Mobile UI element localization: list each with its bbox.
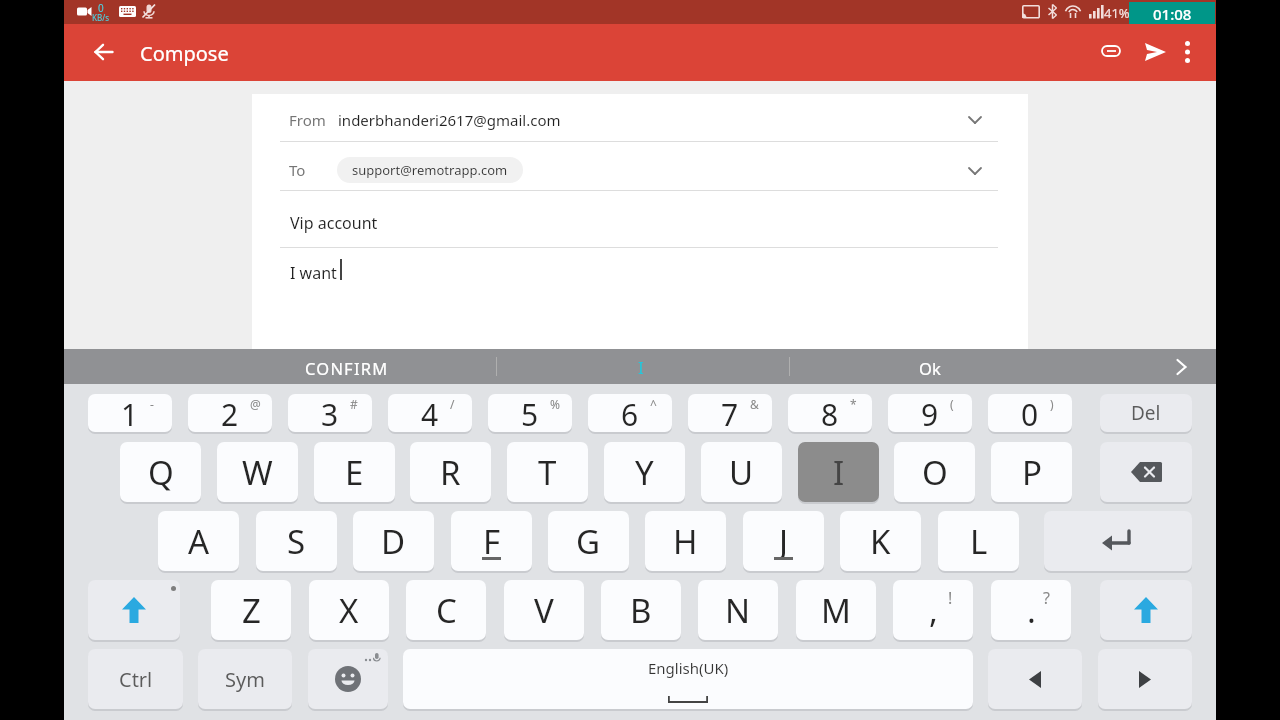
button[interactable]: X [309, 580, 389, 640]
button[interactable] [308, 649, 388, 709]
button[interactable]: M [796, 580, 876, 640]
button[interactable] [164, 349, 496, 384]
button[interactable]: Ctrl [88, 649, 183, 709]
button[interactable]: V [504, 580, 584, 640]
button[interactable]: F [451, 511, 532, 571]
button[interactable]: I [798, 442, 879, 502]
button[interactable]: R [410, 442, 491, 502]
button[interactable]: 6 [588, 394, 672, 432]
button[interactable] [1096, 36, 1128, 68]
staticText: G [576, 519, 601, 564]
button[interactable]: Z [211, 580, 291, 640]
button[interactable] [1146, 349, 1216, 384]
staticText: ! [948, 587, 953, 609]
button[interactable] [789, 349, 1146, 384]
staticText: L [970, 519, 988, 564]
button[interactable]: 5 [488, 394, 572, 432]
button[interactable]: Q [120, 442, 201, 502]
button[interactable]: Y [604, 442, 685, 502]
staticText: M [821, 588, 851, 633]
button[interactable] [988, 649, 1082, 709]
button[interactable]: U [701, 442, 782, 502]
button[interactable]: support@remotrapp.com [337, 157, 523, 183]
button[interactable]: 9 [888, 394, 972, 432]
button[interactable]: T [507, 442, 588, 502]
button[interactable]: To [252, 141, 1028, 190]
button[interactable] [1138, 35, 1172, 69]
button[interactable]: 1 [88, 394, 172, 432]
button[interactable]: N [698, 580, 778, 640]
button[interactable]: H [645, 511, 726, 571]
button[interactable]: D [353, 511, 434, 571]
button[interactable]: . [991, 580, 1071, 640]
staticText: To [289, 160, 306, 180]
button[interactable]: 7 [688, 394, 772, 432]
staticText: , [929, 588, 938, 633]
staticText: N [725, 588, 751, 633]
button[interactable]: Vip account [252, 190, 1028, 246]
button[interactable]: 0 [988, 394, 1072, 432]
button[interactable] [88, 36, 120, 68]
staticText: H [673, 519, 698, 564]
button[interactable]: C [406, 580, 486, 640]
button[interactable]: J [743, 511, 824, 571]
staticText: Ok [919, 357, 941, 379]
button[interactable] [1098, 649, 1192, 709]
staticText: J [779, 519, 789, 564]
staticText: T [538, 450, 557, 495]
button[interactable] [88, 580, 180, 640]
button[interactable]: Del [1100, 394, 1192, 432]
staticText: ^ [650, 396, 657, 412]
button[interactable]: E [314, 442, 395, 502]
button[interactable]: P [991, 442, 1072, 502]
button[interactable]: W [217, 442, 298, 502]
button[interactable]: A [158, 511, 239, 571]
button[interactable]: 4 [388, 394, 472, 432]
staticText: CONFIRM [305, 357, 389, 379]
button[interactable]: 01:08 [1129, 2, 1215, 26]
button[interactable]: G [548, 511, 629, 571]
staticText: 4 [421, 394, 439, 432]
button[interactable]: L [938, 511, 1019, 571]
staticText: 5 [521, 394, 539, 432]
button[interactable]: K [840, 511, 921, 571]
staticText: K [870, 519, 891, 564]
staticText: A [188, 519, 210, 564]
staticText: 2 [221, 394, 239, 432]
staticText: & [750, 396, 759, 412]
staticText: V [534, 588, 554, 633]
button[interactable]: I want [252, 246, 1028, 349]
button[interactable]: Sym [198, 649, 292, 709]
staticText: S [287, 519, 306, 564]
button[interactable]: 8 [788, 394, 872, 432]
staticText: Del [1131, 400, 1161, 426]
staticText: ? [1043, 587, 1050, 609]
button[interactable]: , [893, 580, 973, 640]
button[interactable]: S [256, 511, 337, 571]
button[interactable] [1100, 580, 1192, 640]
button[interactable]: 3 [288, 394, 372, 432]
button[interactable] [1100, 442, 1192, 502]
button[interactable] [496, 349, 789, 384]
staticText: support@remotrapp.com [352, 161, 508, 179]
staticText: . [1027, 588, 1036, 633]
staticText: 0 [98, 1, 104, 15]
staticText: U [729, 450, 754, 495]
staticText: 8 [821, 394, 839, 432]
button[interactable] [1044, 511, 1192, 571]
staticText: 6 [621, 394, 639, 432]
staticText: E [345, 450, 364, 495]
button[interactable]: From [252, 94, 1028, 141]
staticText: 0 [1021, 394, 1039, 432]
button[interactable] [1172, 36, 1202, 68]
staticText: KB/s [92, 12, 109, 23]
button[interactable]: O [894, 442, 975, 502]
staticText: P [1022, 450, 1042, 495]
button[interactable]: B [601, 580, 681, 640]
staticText: 1 [121, 394, 139, 432]
staticText: Z [242, 588, 261, 633]
staticText: W [242, 450, 273, 495]
button[interactable]: 2 [188, 394, 272, 432]
button[interactable]: English(UK) [403, 649, 973, 709]
staticText: O [922, 450, 948, 495]
